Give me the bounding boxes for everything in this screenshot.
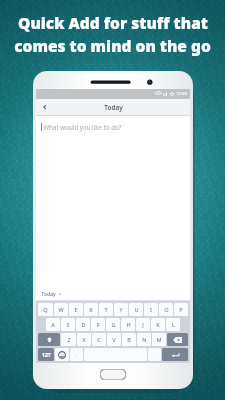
staticText: E — [74, 306, 78, 314]
button[interactable]: C — [92, 333, 106, 346]
staticText: P — [179, 306, 183, 314]
staticText: H — [126, 321, 131, 329]
button[interactable]: F — [91, 318, 105, 331]
button[interactable]: Enter — [162, 348, 188, 361]
staticText: A — [51, 321, 55, 329]
button[interactable]: D — [76, 318, 90, 331]
button[interactable]: H — [121, 318, 135, 331]
staticText: Q — [43, 306, 48, 314]
button[interactable]: Home — [100, 369, 126, 380]
staticText: Today — [41, 290, 56, 297]
staticText: R — [89, 306, 93, 314]
staticText: X — [82, 336, 86, 344]
button[interactable]: Emoji — [55, 348, 69, 361]
staticText: M — [156, 336, 162, 344]
button[interactable]: O — [159, 303, 173, 316]
staticText: . — [154, 352, 155, 357]
staticText: L — [172, 321, 175, 329]
button[interactable]: M — [152, 333, 166, 346]
staticText: K — [156, 321, 160, 329]
staticText: V — [112, 336, 116, 344]
button[interactable]: K — [151, 318, 165, 331]
button[interactable]: , — [70, 348, 83, 361]
staticText: Z — [67, 336, 71, 344]
staticText: G — [111, 321, 116, 329]
staticText: B — [127, 336, 131, 344]
button[interactable]: U — [129, 303, 143, 316]
staticText: comes to mind on the go — [14, 35, 211, 56]
staticText: What would you like to do? — [43, 123, 122, 131]
staticText: D — [81, 321, 86, 329]
button[interactable]: Symbols — [38, 348, 54, 361]
staticText: 12!? — [42, 352, 51, 358]
staticText: N — [142, 336, 147, 344]
button[interactable]: B — [122, 333, 136, 346]
staticText: Quick Add for stuff that — [18, 12, 208, 33]
staticText: , — [76, 352, 77, 357]
button[interactable]: S — [61, 318, 75, 331]
staticText: Y — [119, 306, 123, 314]
staticText: O — [164, 306, 169, 314]
button[interactable]: Shift — [38, 333, 60, 346]
staticText: F — [97, 321, 100, 329]
button[interactable]: E — [69, 303, 83, 316]
button[interactable]: Backspace — [167, 333, 188, 346]
button[interactable]: Q — [38, 303, 53, 316]
staticText: I — [150, 306, 152, 314]
button[interactable]: Z — [61, 333, 76, 346]
button[interactable]: Y — [114, 303, 128, 316]
button[interactable]: . — [148, 348, 161, 361]
button[interactable]: N — [137, 333, 151, 346]
button[interactable]: T — [99, 303, 113, 316]
button[interactable]: A — [46, 318, 60, 331]
button[interactable]: I — [144, 303, 158, 316]
button[interactable]: Today — [36, 286, 190, 300]
button[interactable]: Back — [36, 99, 54, 115]
button[interactable]: G — [106, 318, 120, 331]
staticText: T — [104, 306, 108, 314]
button[interactable]: L — [166, 318, 180, 331]
staticText: J — [142, 321, 144, 329]
button[interactable]: W — [54, 303, 68, 316]
staticText: S — [66, 321, 70, 329]
button[interactable]: R — [84, 303, 98, 316]
button[interactable]: P — [174, 303, 188, 316]
staticText: 12:30 — [176, 91, 187, 97]
staticText: C — [97, 336, 101, 344]
button[interactable]: J — [136, 318, 150, 331]
staticText: U — [134, 306, 139, 314]
button[interactable]: X — [77, 333, 91, 346]
button[interactable]: V — [107, 333, 121, 346]
staticText: W — [58, 306, 64, 314]
staticText: Today — [104, 103, 123, 112]
